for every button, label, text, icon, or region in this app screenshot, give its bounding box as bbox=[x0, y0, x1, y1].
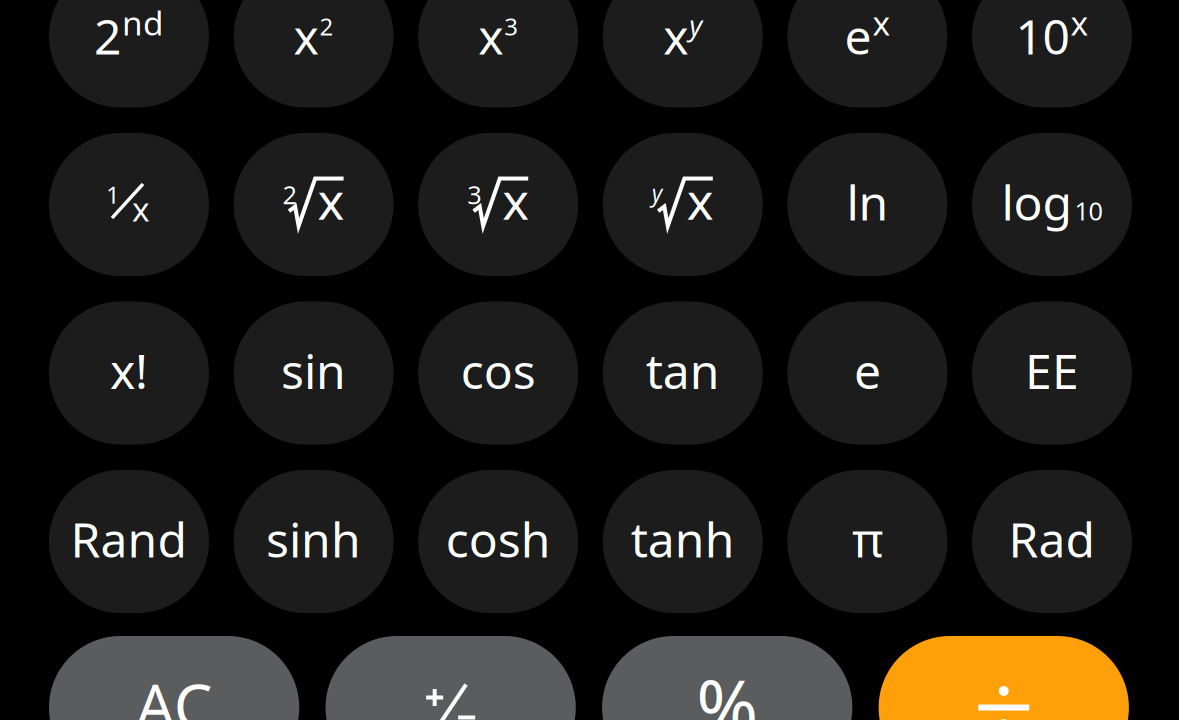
staticText: ln bbox=[846, 170, 888, 234]
staticText: 2 bbox=[94, 4, 121, 68]
staticText: 2 bbox=[320, 10, 334, 42]
staticText: x bbox=[687, 166, 714, 234]
staticText: π bbox=[852, 507, 883, 571]
button[interactable]: e bbox=[787, 301, 947, 444]
staticText: 2 bbox=[283, 177, 297, 211]
button[interactable] bbox=[879, 636, 1129, 720]
button[interactable]: e bbox=[787, 0, 947, 107]
button[interactable]: x bbox=[603, 0, 763, 107]
button[interactable]: Rand bbox=[49, 470, 209, 613]
button[interactable]: sin bbox=[234, 301, 394, 444]
button[interactable]: 10 bbox=[972, 0, 1132, 107]
staticText: e bbox=[844, 3, 871, 69]
staticText: x bbox=[294, 4, 319, 68]
button[interactable]: x! bbox=[49, 301, 209, 444]
button[interactable]: log bbox=[972, 133, 1132, 276]
button[interactable]: sinh bbox=[234, 470, 394, 613]
staticText: nd bbox=[122, 1, 164, 45]
button[interactable]: cosh bbox=[418, 470, 578, 613]
staticText: % bbox=[696, 655, 758, 720]
button[interactable]: 3 bbox=[418, 133, 578, 276]
staticText: cos bbox=[461, 339, 536, 402]
staticText: x bbox=[318, 166, 345, 234]
staticText: tanh bbox=[631, 507, 735, 571]
staticText: 3 bbox=[504, 10, 518, 42]
staticText: x bbox=[502, 166, 529, 234]
staticText: sin bbox=[281, 339, 346, 402]
button[interactable]: tanh bbox=[603, 470, 763, 613]
button[interactable]: x bbox=[418, 0, 578, 107]
button[interactable]: AC bbox=[49, 636, 299, 720]
button[interactable]: 2 bbox=[234, 133, 394, 276]
staticText: x bbox=[872, 1, 890, 45]
staticText: Rand bbox=[70, 507, 187, 571]
staticText: AC bbox=[136, 664, 213, 720]
staticText: 10 bbox=[1015, 4, 1069, 68]
staticText: Rad bbox=[1008, 507, 1095, 571]
button[interactable]: Rad bbox=[972, 470, 1132, 613]
button[interactable]: y bbox=[603, 133, 763, 276]
staticText: 1 bbox=[106, 178, 120, 210]
button[interactable]: ln bbox=[787, 133, 947, 276]
staticText: 10 bbox=[1074, 194, 1102, 228]
staticText: y bbox=[652, 177, 663, 208]
button[interactable]: EE bbox=[972, 301, 1132, 444]
staticText: log bbox=[1001, 170, 1072, 234]
staticText: EE bbox=[1025, 339, 1079, 402]
staticText: 3 bbox=[467, 177, 481, 211]
staticText: tan bbox=[646, 339, 720, 402]
button[interactable]: 1 bbox=[49, 133, 209, 276]
button[interactable]: 2 bbox=[49, 0, 209, 107]
button[interactable] bbox=[326, 636, 576, 720]
button[interactable]: π bbox=[787, 470, 947, 613]
staticText: x bbox=[478, 4, 503, 68]
staticText: y bbox=[689, 6, 702, 44]
button[interactable]: tan bbox=[603, 301, 763, 444]
staticText: x bbox=[132, 186, 150, 231]
staticText: x! bbox=[110, 339, 148, 402]
staticText: cosh bbox=[446, 507, 551, 571]
button[interactable]: x bbox=[234, 0, 394, 107]
button[interactable]: cos bbox=[418, 301, 578, 444]
button[interactable]: % bbox=[602, 636, 852, 720]
staticText: x bbox=[1070, 1, 1088, 45]
staticText: e bbox=[854, 338, 881, 403]
staticText: sinh bbox=[266, 507, 361, 571]
staticText: x bbox=[663, 4, 688, 68]
